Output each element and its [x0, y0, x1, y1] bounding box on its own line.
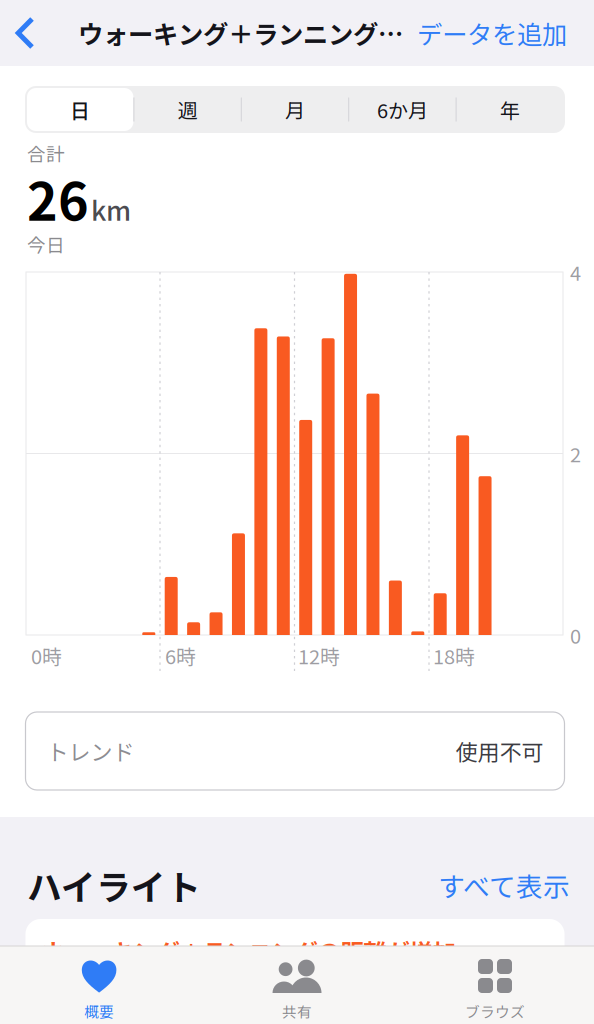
staticText: 0 — [570, 620, 581, 649]
button[interactable]: 6か月 — [349, 88, 456, 131]
button[interactable]: 戻る — [0, 0, 60, 66]
staticText: 年 — [500, 95, 520, 124]
staticText: 合計 — [27, 139, 65, 166]
button[interactable]: 週 — [134, 88, 241, 131]
staticText: 26 — [27, 160, 89, 236]
staticText: 18時 — [433, 641, 475, 670]
button[interactable]: データを追加 — [407, 0, 567, 66]
staticText: 週 — [178, 95, 198, 124]
staticText: 4 — [570, 257, 581, 286]
staticText: 日 — [70, 95, 90, 124]
staticText: ウォーキング＋ランニングの距離が増加 — [41, 934, 455, 968]
staticText: 月 — [285, 95, 305, 124]
staticText: 使用不可 — [455, 735, 543, 767]
staticText: ブラウズ — [465, 1000, 525, 1022]
button[interactable]: 月 — [242, 88, 348, 131]
staticText: データを追加 — [417, 15, 567, 51]
staticText: 今日 — [27, 230, 65, 257]
staticText: 概要 — [84, 1000, 114, 1022]
button[interactable]: ブラウズ — [396, 946, 594, 1024]
staticText: 12時 — [298, 641, 340, 670]
staticText: km — [91, 190, 131, 228]
staticText: 2 — [570, 439, 581, 468]
button[interactable]: 概要 — [0, 946, 198, 1024]
button[interactable]: トレンド — [25, 712, 564, 790]
button[interactable]: 日 — [27, 88, 133, 131]
staticText: ウォーキング＋ランニング… — [78, 15, 403, 51]
staticText: トレンド — [46, 735, 134, 767]
staticText: 6時 — [165, 641, 196, 670]
staticText: 6か月 — [377, 95, 428, 124]
button[interactable]: すべて表示 — [438, 866, 570, 904]
staticText: 0時 — [31, 641, 62, 670]
staticText: 共有 — [282, 1000, 312, 1022]
button[interactable]: 共有 — [198, 946, 396, 1024]
button[interactable]: 年 — [457, 88, 563, 131]
staticText: ハイライト — [27, 860, 201, 910]
staticText: すべて表示 — [438, 866, 570, 904]
